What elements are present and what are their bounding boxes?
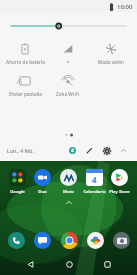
button[interactable]: Enviar pantalla [4, 73, 46, 99]
staticText: 4 [92, 174, 97, 185]
button[interactable]: Brillo [0, 19, 137, 33]
staticText: Duo [38, 188, 47, 194]
button[interactable]: Zona Wi-Fi [46, 73, 89, 99]
button[interactable]: Atrás [22, 256, 38, 272]
button[interactable]: Configuración [100, 144, 113, 157]
button[interactable]: Red móvil [46, 41, 89, 67]
button[interactable]: Chrome [59, 230, 79, 250]
button[interactable]: Moto [56, 169, 81, 194]
button[interactable]: Lun., 4 feb. [7, 147, 34, 154]
button[interactable]: Cámara [111, 230, 131, 250]
button[interactable]: Mensajes [32, 230, 52, 250]
button[interactable]: Fotos [85, 230, 105, 250]
staticText: Zona Wi-Fi [56, 91, 79, 97]
staticText: Modo avión [98, 59, 124, 65]
button[interactable]: Duo [30, 169, 55, 194]
staticText: Moto [63, 188, 74, 194]
staticText: Ahorro de batería [6, 59, 45, 65]
button[interactable]: Inicio [61, 256, 77, 272]
button[interactable]: 4 [82, 169, 107, 194]
staticText: Calendario [83, 188, 106, 194]
staticText: 10:00 [117, 3, 133, 11]
staticText: Play Store [109, 188, 130, 194]
button[interactable]: Editar [83, 144, 96, 157]
button[interactable]: Abrir cajón de apps [64, 200, 74, 205]
button[interactable]: Teléfono [6, 230, 26, 250]
button[interactable]: Modo avión [89, 41, 132, 67]
button[interactable]: Recientes [99, 256, 115, 272]
staticText: Google [10, 188, 25, 194]
button[interactable]: Google [5, 169, 30, 194]
button[interactable]: Ahorro de batería [4, 41, 46, 67]
staticText: Enviar pantalla [9, 91, 42, 97]
button[interactable]: Usuario [66, 144, 79, 157]
button[interactable]: Play Store [107, 169, 132, 194]
button[interactable]: Contraer [117, 144, 130, 157]
